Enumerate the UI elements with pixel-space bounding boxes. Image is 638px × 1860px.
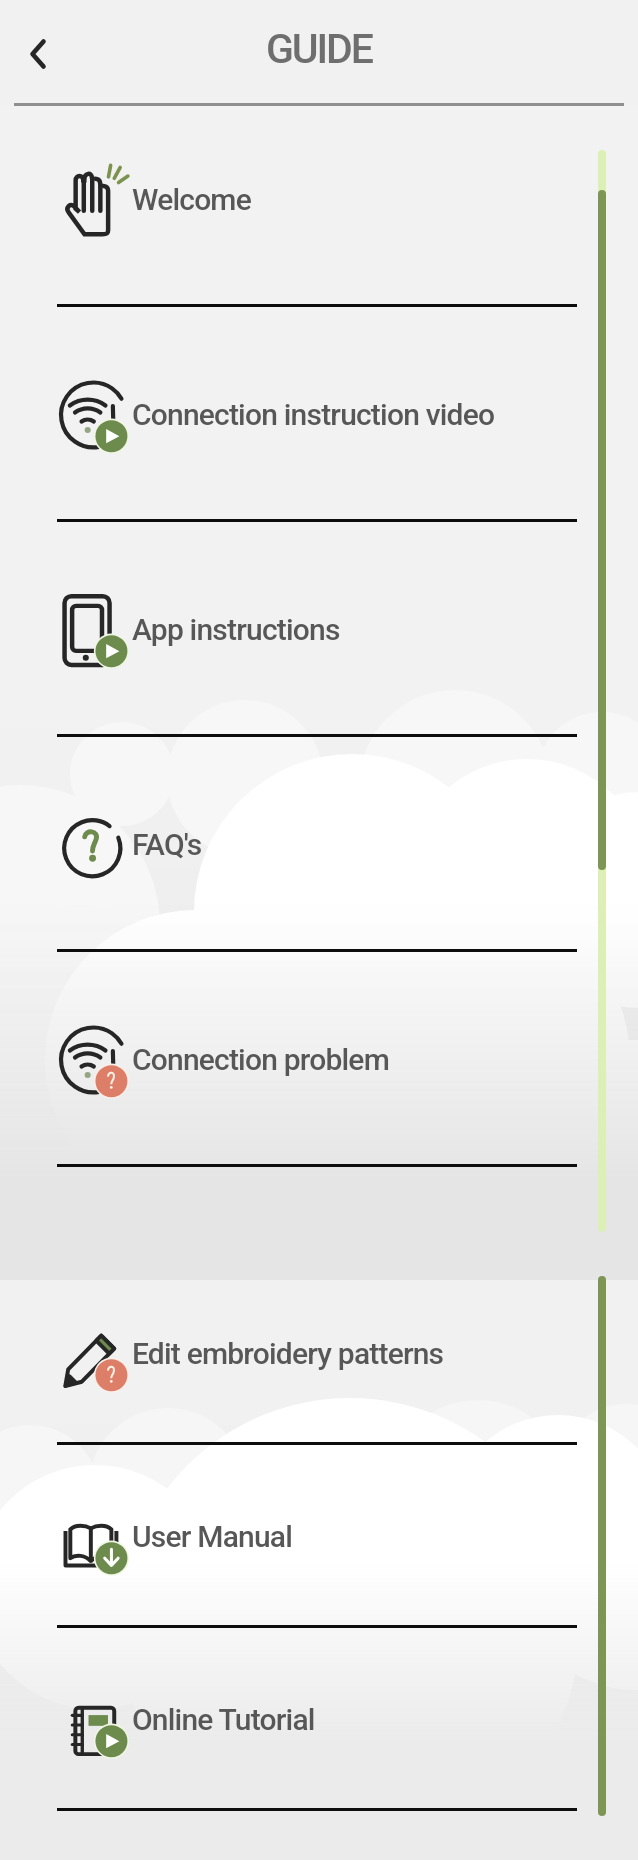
staticText: Connection instruction video — [132, 397, 495, 432]
staticText: Connection problem — [132, 1042, 389, 1077]
button[interactable]: User Manual — [0, 1445, 638, 1628]
button[interactable]: Edit embroidery patterns — [0, 1262, 638, 1445]
button[interactable]: Connection problem — [0, 952, 638, 1167]
staticText: Online Tutorial — [132, 1702, 315, 1737]
staticText: Edit embroidery patterns — [132, 1336, 444, 1371]
staticText: User Manual — [132, 1519, 293, 1554]
staticText: Welcome — [132, 182, 251, 217]
staticText: FAQ's — [132, 827, 202, 862]
button[interactable]: Online Tutorial — [0, 1628, 638, 1811]
button[interactable]: Welcome — [0, 106, 638, 307]
button[interactable]: FAQ's — [0, 737, 638, 952]
button[interactable]: App instructions — [0, 522, 638, 737]
button[interactable]: Back — [9, 25, 67, 83]
staticText: GUIDE — [266, 25, 372, 73]
button[interactable]: Connection instruction video — [0, 307, 638, 522]
staticText: App instructions — [132, 612, 340, 647]
